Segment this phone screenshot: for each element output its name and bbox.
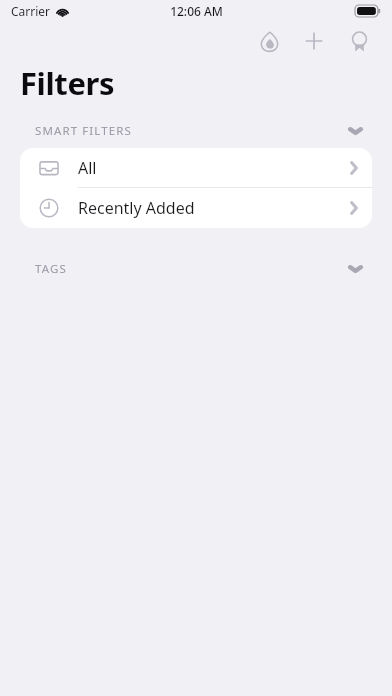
button[interactable]: Add bbox=[295, 22, 333, 60]
button[interactable]: TAGS bbox=[0, 256, 392, 282]
button[interactable]: Badges bbox=[340, 22, 378, 60]
staticText: TAGS bbox=[35, 261, 67, 277]
staticText: All bbox=[78, 157, 97, 179]
staticText: Recently Added bbox=[78, 197, 195, 219]
button[interactable]: SMART FILTERS bbox=[0, 118, 392, 144]
button[interactable]: Highlights bbox=[250, 22, 288, 60]
button[interactable]: Recently Added bbox=[20, 188, 372, 228]
button[interactable]: All bbox=[20, 148, 372, 188]
staticText: Filters bbox=[20, 62, 115, 104]
staticText: SMART FILTERS bbox=[35, 123, 132, 139]
staticText: Carrier bbox=[11, 3, 51, 19]
staticText: 12:06 AM bbox=[170, 3, 223, 19]
